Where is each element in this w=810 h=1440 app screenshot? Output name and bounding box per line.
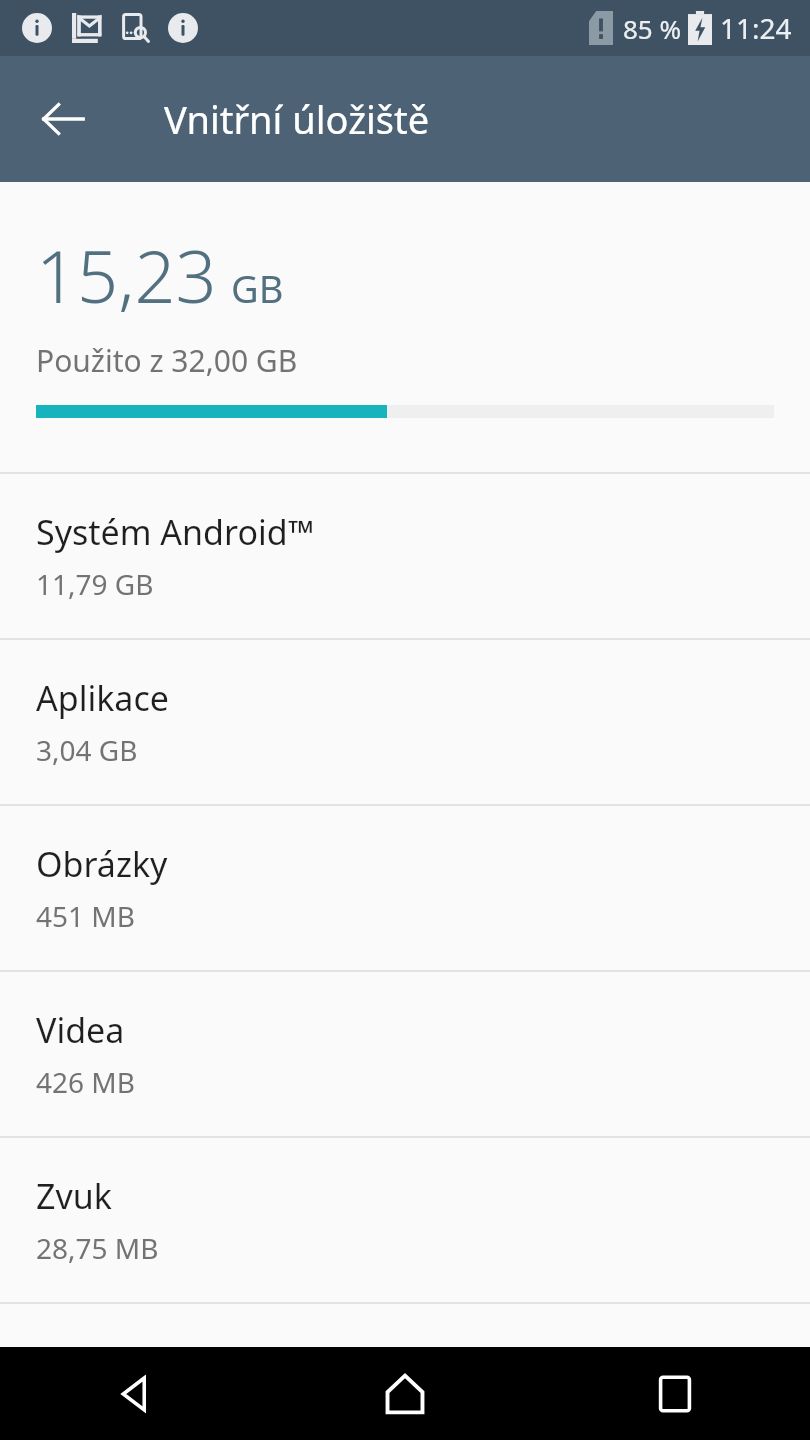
staticText: 11,79 GB <box>36 565 154 603</box>
staticText: Videa <box>36 1007 125 1053</box>
button[interactable]: Systém Android™ <box>0 474 810 638</box>
staticText: 15,23 <box>36 226 217 324</box>
button[interactable]: Aplikace <box>0 640 810 804</box>
button[interactable]: Back <box>0 1347 270 1440</box>
button[interactable]: Recent apps <box>540 1347 810 1440</box>
staticText: 426 MB <box>36 1063 135 1101</box>
staticText: Systém Android™ <box>36 509 314 555</box>
staticText: 3,04 GB <box>36 731 138 769</box>
staticText: Aplikace <box>36 675 169 721</box>
staticText: Vnitřní úložiště <box>164 93 430 145</box>
button[interactable]: Obrázky <box>0 806 810 970</box>
staticText: 28,75 MB <box>36 1229 159 1267</box>
staticText: Zvuk <box>36 1173 112 1219</box>
staticText: 451 MB <box>36 897 135 935</box>
staticText: GB <box>231 262 284 314</box>
button[interactable]: Back <box>34 90 92 148</box>
staticText: 11:24 <box>720 9 792 47</box>
staticText: 85 % <box>623 11 682 46</box>
button[interactable]: Zvuk <box>0 1138 810 1302</box>
staticText: Obrázky <box>36 841 168 887</box>
button[interactable]: Home <box>270 1347 540 1440</box>
staticText: Použito z 32,00 GB <box>36 340 298 381</box>
button[interactable]: Videa <box>0 972 810 1136</box>
